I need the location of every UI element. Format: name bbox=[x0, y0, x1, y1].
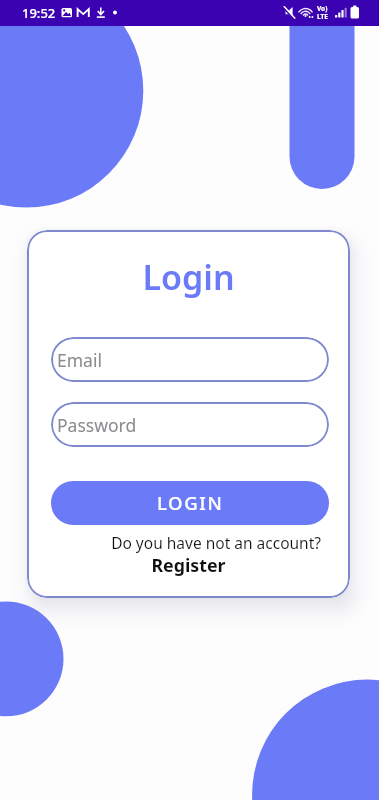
staticText: Login bbox=[27, 254, 350, 300]
staticText: 19:52 bbox=[22, 4, 56, 22]
staticText: Email bbox=[57, 348, 102, 372]
staticText: LTE bbox=[317, 12, 328, 21]
staticText: Do you have not an account? bbox=[27, 532, 321, 553]
button[interactable]: Email bbox=[51, 337, 329, 382]
button[interactable]: Register bbox=[27, 553, 350, 577]
staticText: Vo) bbox=[317, 4, 328, 13]
button[interactable]: Password bbox=[51, 402, 329, 447]
button[interactable]: LOGIN bbox=[51, 481, 329, 525]
staticText: Password bbox=[57, 413, 137, 437]
staticText: LOGIN bbox=[157, 490, 224, 515]
